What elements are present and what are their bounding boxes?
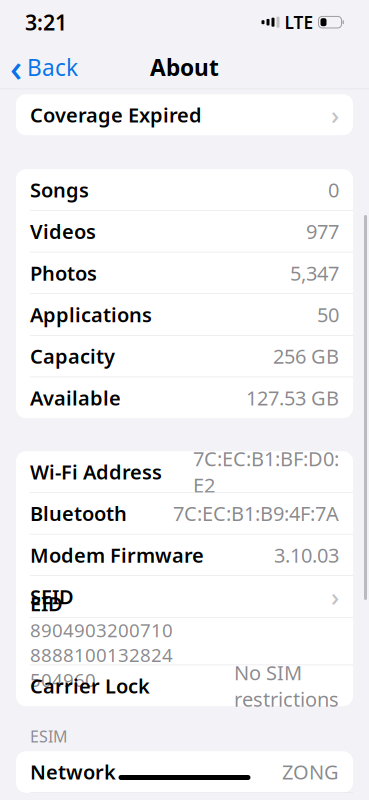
button[interactable]: ‹: [0, 38, 78, 96]
staticText: ›: [331, 98, 339, 131]
staticText: Coverage Expired: [30, 101, 202, 128]
button[interactable]: Photos: [16, 252, 353, 293]
button[interactable]: SEID: [16, 576, 353, 617]
button[interactable]: Wi-Fi Address: [16, 451, 353, 492]
staticText: 0: [328, 176, 339, 203]
staticText: About: [150, 52, 219, 82]
button[interactable]: Videos: [16, 211, 353, 252]
staticText: No SIM restrictions: [234, 659, 339, 712]
staticText: Bluetooth: [30, 500, 127, 527]
staticText: Back: [27, 52, 78, 82]
staticText: Available: [30, 384, 121, 411]
button[interactable]: Modem Firmware: [16, 534, 353, 575]
staticText: ZONG: [282, 758, 339, 785]
button[interactable]: Capacity: [16, 336, 353, 377]
staticText: 50: [317, 301, 339, 328]
button[interactable]: Bluetooth: [16, 493, 353, 534]
staticText: 977: [306, 218, 339, 245]
staticText: 7C:EC:B1:BF:D0:E2: [193, 445, 339, 498]
staticText: 5,347: [290, 260, 339, 286]
staticText: Capacity: [30, 343, 115, 369]
button[interactable]: Coverage Expired: [16, 94, 353, 135]
staticText: Photos: [30, 260, 97, 286]
button[interactable]: Applications: [16, 294, 353, 335]
staticText: Songs: [30, 176, 89, 203]
staticText: Videos: [30, 218, 96, 245]
button[interactable]: Songs: [16, 169, 353, 210]
staticText: Modem Firmware: [30, 542, 204, 568]
staticText: EID: [30, 590, 63, 617]
button[interactable]: Network: [16, 751, 353, 792]
staticText: SEID: [30, 583, 74, 610]
staticText: 127.53 GB: [246, 384, 339, 411]
button[interactable]: Carrier Lock: [16, 665, 353, 706]
staticText: LTE: [284, 11, 313, 34]
staticText: ‹: [10, 42, 22, 92]
staticText: Carrier Lock: [30, 672, 150, 699]
button[interactable]: Available: [16, 377, 353, 418]
staticText: ESIM: [30, 726, 68, 747]
staticText: 7C:EC:B1:B9:4F:7A: [173, 500, 339, 527]
staticText: ›: [331, 580, 339, 613]
staticText: 89049032007108888100132824504960: [30, 618, 173, 692]
staticText: 256 GB: [273, 343, 339, 369]
staticText: 3:21: [25, 8, 67, 36]
staticText: Applications: [30, 301, 152, 328]
staticText: Network: [30, 758, 116, 785]
staticText: Wi-Fi Address: [30, 458, 162, 485]
staticText: 3.10.03: [274, 542, 339, 568]
button[interactable]: EID: [16, 618, 353, 665]
